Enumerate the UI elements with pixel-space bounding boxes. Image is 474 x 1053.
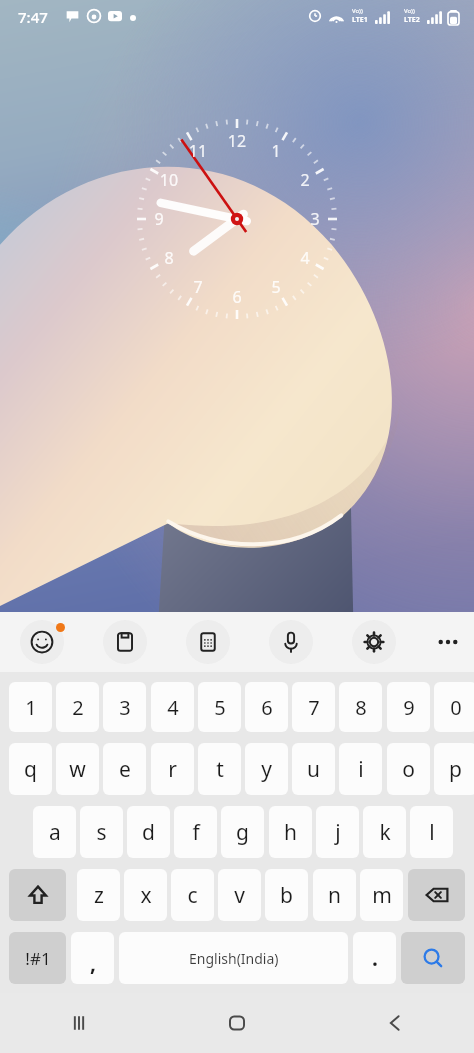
button[interactable]: u — [292, 743, 335, 795]
staticText: t — [216, 755, 224, 784]
button[interactable]: 8 — [339, 682, 382, 732]
button[interactable]: b — [265, 869, 308, 921]
staticText: u — [307, 755, 320, 784]
button[interactable]: w — [56, 743, 99, 795]
button[interactable]: Recent apps — [0, 993, 158, 1053]
staticText: 8 — [157, 247, 181, 269]
staticText: x — [140, 881, 152, 910]
button[interactable]: f — [174, 806, 217, 858]
staticText: Vo)) — [404, 7, 415, 15]
staticText: 6 — [261, 694, 273, 721]
staticText: q — [24, 755, 37, 784]
button[interactable]: c — [171, 869, 214, 921]
staticText: 9 — [403, 694, 415, 721]
button[interactable]: English(India) — [119, 932, 348, 984]
staticText: LTE1 — [352, 15, 368, 25]
staticText: 8 — [355, 694, 367, 721]
button[interactable]: . — [353, 932, 396, 984]
staticText: w — [69, 755, 86, 784]
staticText: l — [429, 818, 435, 847]
button[interactable]: Keyboard modes — [186, 620, 230, 664]
staticText: i — [358, 755, 364, 784]
button[interactable]: Settings — [352, 620, 396, 664]
button[interactable]: q — [9, 743, 52, 795]
button[interactable]: r — [151, 743, 194, 795]
button[interactable]: 1 — [9, 682, 52, 732]
button[interactable]: i — [339, 743, 382, 795]
button[interactable]: 4 — [151, 682, 194, 732]
staticText: 12 — [225, 130, 249, 152]
staticText: s — [96, 818, 107, 847]
button[interactable]: 9 — [387, 682, 430, 732]
staticText: 3 — [303, 208, 327, 230]
staticText: 1 — [25, 694, 37, 721]
button[interactable]: s — [80, 806, 123, 858]
staticText: 1 — [264, 140, 288, 162]
staticText: v — [234, 881, 245, 910]
staticText: 11 — [186, 140, 210, 162]
button[interactable]: Emoji — [20, 620, 64, 664]
button[interactable]: n — [313, 869, 356, 921]
staticText: , — [90, 949, 96, 978]
button[interactable]: Shift — [9, 869, 66, 921]
button[interactable]: , — [71, 932, 114, 984]
button[interactable]: y — [245, 743, 288, 795]
staticText: m — [372, 881, 392, 910]
staticText: b — [280, 881, 293, 910]
button[interactable]: l — [410, 806, 453, 858]
button[interactable]: d — [127, 806, 170, 858]
staticText: 7 — [186, 276, 210, 298]
button[interactable]: 5 — [198, 682, 241, 732]
button[interactable]: t — [198, 743, 241, 795]
staticText: 10 — [157, 169, 181, 191]
button[interactable]: g — [221, 806, 264, 858]
staticText: 9 — [147, 208, 171, 230]
staticText: 0 — [450, 694, 462, 721]
staticText: r — [168, 755, 177, 784]
staticText: k — [379, 818, 391, 847]
staticText: 5 — [264, 276, 288, 298]
button[interactable]: e — [103, 743, 146, 795]
button[interactable]: a — [33, 806, 76, 858]
staticText: z — [94, 881, 104, 910]
button[interactable]: 2 — [56, 682, 99, 732]
staticText: 2 — [72, 694, 84, 721]
staticText: 7:47 — [18, 7, 48, 27]
button[interactable]: x — [124, 869, 167, 921]
staticText: d — [142, 818, 155, 847]
button[interactable]: 0 — [434, 682, 474, 732]
button[interactable]: Search — [401, 932, 465, 984]
staticText: 4 — [167, 694, 179, 721]
staticText: o — [402, 755, 415, 784]
staticText: 2 — [293, 169, 317, 191]
staticText: f — [192, 818, 200, 847]
button[interactable]: 3 — [103, 682, 146, 732]
staticText: 7 — [308, 694, 320, 721]
staticText: Vo)) — [352, 7, 363, 15]
button[interactable]: Backspace — [408, 869, 465, 921]
staticText: 6 — [225, 286, 249, 308]
staticText: a — [49, 818, 61, 847]
staticText: !#1 — [25, 947, 51, 970]
staticText: h — [284, 818, 297, 847]
button[interactable]: More options — [426, 620, 470, 664]
button[interactable]: m — [360, 869, 403, 921]
staticText: g — [236, 818, 249, 847]
staticText: 5 — [214, 694, 226, 721]
button[interactable]: 7 — [292, 682, 335, 732]
button[interactable]: k — [363, 806, 406, 858]
button[interactable]: Voice input — [269, 620, 313, 664]
button[interactable]: v — [218, 869, 261, 921]
button[interactable]: p — [434, 743, 474, 795]
button[interactable]: Back — [316, 993, 474, 1053]
staticText: n — [328, 881, 341, 910]
button[interactable]: Clipboard — [103, 620, 147, 664]
button[interactable]: j — [316, 806, 359, 858]
button[interactable]: h — [269, 806, 312, 858]
staticText: p — [449, 755, 462, 784]
button[interactable]: Home — [158, 993, 316, 1053]
button[interactable]: 6 — [245, 682, 288, 732]
button[interactable]: !#1 — [9, 932, 66, 984]
button[interactable]: o — [387, 743, 430, 795]
button[interactable]: z — [77, 869, 120, 921]
